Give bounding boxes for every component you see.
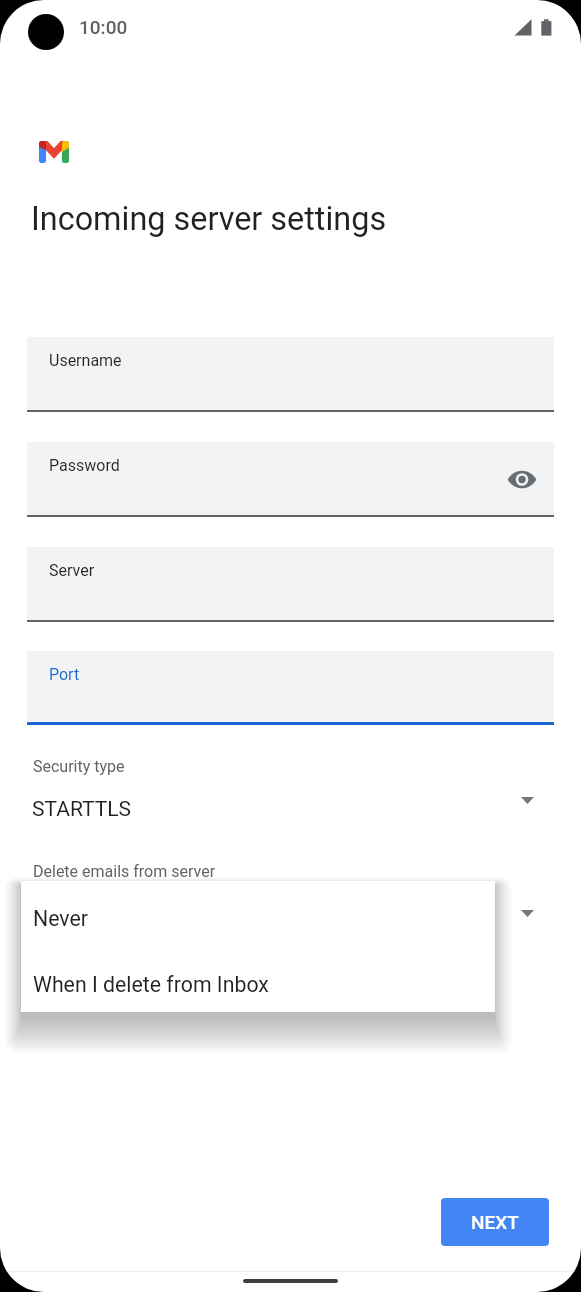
staticText: Port	[49, 665, 80, 684]
staticText: Never	[33, 906, 89, 931]
staticText: Security type	[33, 757, 125, 776]
button[interactable]: NEXT	[441, 1198, 549, 1246]
staticText: When I delete from Inbox	[33, 972, 269, 997]
staticText: Password	[49, 456, 120, 475]
staticText: NEXT	[471, 1211, 519, 1233]
button[interactable]: Port	[27, 651, 554, 725]
button[interactable]: Show password	[498, 455, 546, 503]
staticText: Delete emails from server	[33, 862, 216, 881]
staticText: STARTTLS	[32, 797, 132, 822]
staticText: 10:00	[79, 16, 128, 38]
button[interactable]: Never	[21, 881, 495, 946]
button[interactable]: When I delete from Inbox	[21, 946, 495, 1012]
staticText: Username	[49, 351, 122, 370]
button[interactable]: Username	[27, 337, 554, 412]
staticText: Incoming server settings	[31, 200, 387, 238]
button[interactable]: Server	[27, 547, 554, 622]
button[interactable]: Password	[27, 442, 554, 517]
staticText: Server	[49, 561, 95, 580]
button[interactable]: Security type dropdown	[503, 776, 551, 824]
button[interactable]: Delete emails from server dropdown	[503, 889, 551, 937]
